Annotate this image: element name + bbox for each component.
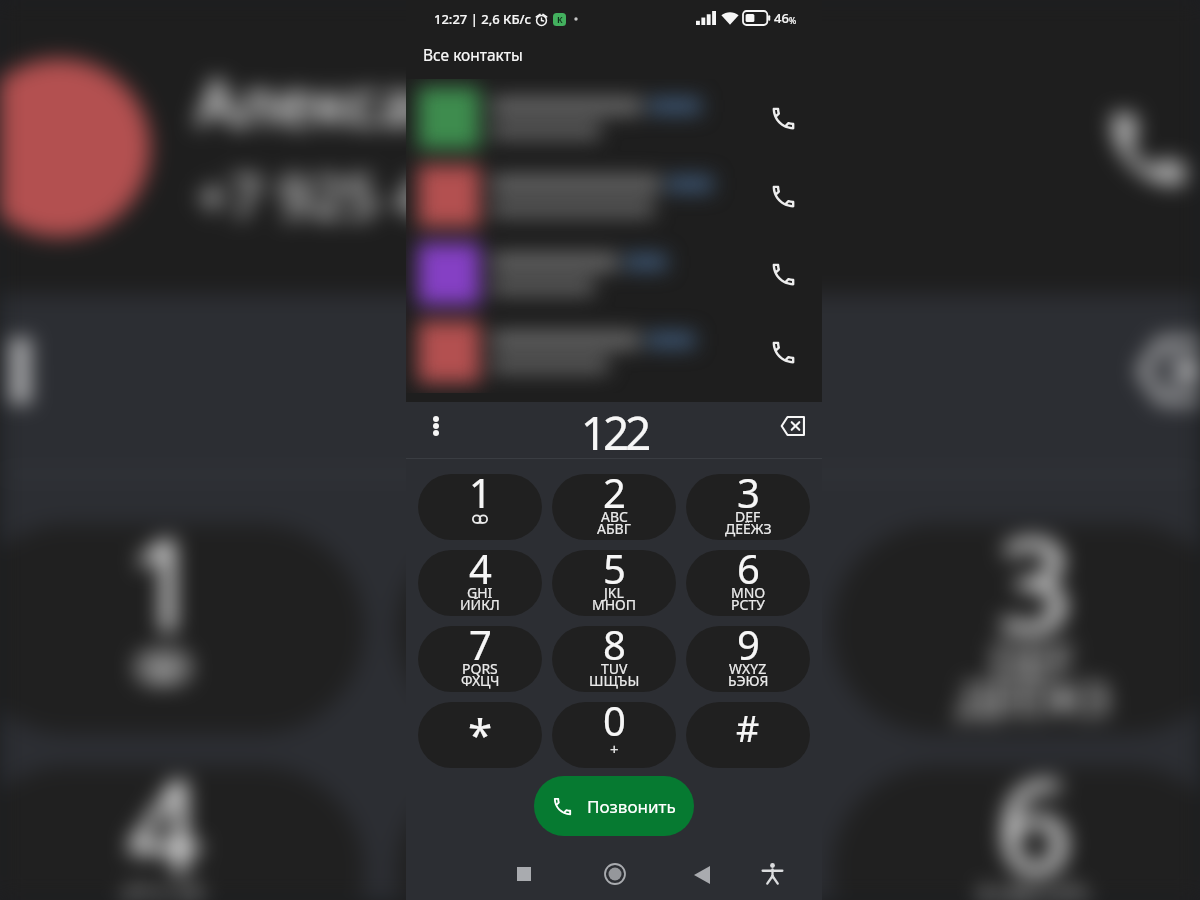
- button[interactable]: Recents: [499, 850, 549, 900]
- staticText: 4: [469, 550, 492, 595]
- button[interactable]: 7: [418, 626, 542, 692]
- staticText: ИЙКЛ: [460, 595, 500, 614]
- staticText: +: [610, 739, 619, 759]
- staticText: АБВГ: [597, 519, 631, 538]
- staticText: DEF: [735, 507, 761, 526]
- staticText: %: [789, 15, 797, 27]
- button[interactable]: 0: [552, 702, 676, 768]
- staticText: 0: [603, 702, 626, 747]
- staticText: 5: [603, 550, 626, 595]
- button[interactable]: Call contact: [406, 157, 822, 235]
- button[interactable]: 2: [552, 474, 676, 540]
- button[interactable]: Call contact: [756, 169, 810, 223]
- staticText: JKL: [566, 871, 631, 900]
- staticText: ABC: [556, 629, 644, 689]
- staticText: ДЕЁЖЗ: [958, 667, 1111, 727]
- staticText: TUV: [601, 659, 628, 678]
- staticText: 1: [469, 474, 492, 519]
- button[interactable]: 8: [552, 626, 676, 692]
- staticText: WXYZ: [729, 659, 767, 678]
- staticText: 6: [997, 766, 1072, 900]
- staticText: DEF: [991, 629, 1075, 689]
- staticText: ФХЦЧ: [461, 671, 500, 690]
- staticText: ДЕЁЖЗ: [725, 519, 772, 538]
- staticText: 122: [0, 291, 1200, 470]
- button[interactable]: Call contact: [756, 247, 810, 301]
- staticText: K: [557, 14, 563, 26]
- button[interactable]: 9: [686, 626, 810, 692]
- staticText: Все контакты: [423, 44, 523, 65]
- staticText: 3: [997, 524, 1072, 667]
- staticText: MNO: [978, 871, 1092, 900]
- staticText: 9: [737, 626, 760, 671]
- staticText: 3: [737, 474, 760, 519]
- staticText: ABC: [601, 507, 628, 526]
- staticText: 2: [562, 524, 637, 667]
- button[interactable]: Home: [590, 849, 640, 899]
- staticText: 122: [406, 401, 822, 457]
- button[interactable]: Back: [677, 850, 727, 900]
- button[interactable]: 1: [418, 474, 542, 540]
- button[interactable]: #: [686, 702, 810, 768]
- staticText: 1: [127, 524, 202, 667]
- staticText: Александр Иванов: [196, 59, 796, 145]
- staticText: MNO: [731, 583, 766, 602]
- button[interactable]: Call contact: [406, 79, 822, 157]
- staticText: 12:27 | 2,6 КБ/с: [434, 10, 532, 28]
- staticText: JKL: [604, 583, 624, 602]
- button[interactable]: Backspace: [768, 402, 816, 450]
- staticText: GHI: [121, 871, 205, 900]
- button[interactable]: Call contact: [756, 91, 810, 145]
- button[interactable]: More options: [412, 402, 460, 450]
- button[interactable]: *: [418, 702, 542, 768]
- staticText: +7 925 444-33-22: [196, 157, 666, 237]
- button[interactable]: Accessibility: [747, 848, 797, 898]
- button[interactable]: Call contact: [406, 235, 822, 313]
- staticText: ЬЭЮЯ: [728, 671, 769, 690]
- staticText: 5: [562, 766, 637, 900]
- staticText: *: [468, 704, 493, 764]
- staticText: 6: [737, 550, 760, 595]
- staticText: АБВГ: [543, 667, 653, 727]
- staticText: РСТУ: [731, 595, 765, 614]
- button[interactable]: 3: [686, 474, 810, 540]
- button[interactable]: 4: [418, 550, 542, 616]
- staticText: 7: [469, 626, 492, 671]
- staticText: МНОП: [592, 595, 637, 614]
- staticText: ШЩЪЫ: [589, 671, 640, 690]
- staticText: 4: [127, 766, 202, 900]
- staticText: PQRS: [462, 659, 498, 678]
- button[interactable]: 6: [686, 550, 810, 616]
- button[interactable]: 5: [552, 550, 676, 616]
- button[interactable]: Call contact: [756, 325, 810, 379]
- staticText: 2: [603, 474, 626, 519]
- staticText: 46: [774, 9, 789, 27]
- staticText: 8: [603, 626, 626, 671]
- staticText: Позвонить: [587, 795, 676, 818]
- staticText: GHI: [467, 583, 493, 602]
- button[interactable]: Call contact: [406, 313, 822, 391]
- button[interactable]: Позвонить: [534, 776, 694, 836]
- staticText: #: [736, 704, 760, 753]
